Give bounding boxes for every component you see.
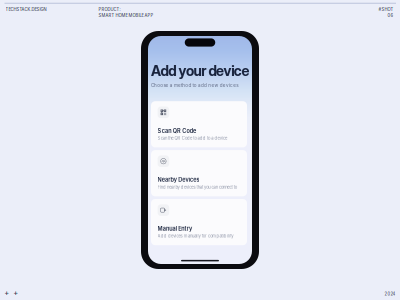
staticText: Scan QR Code bbox=[158, 127, 196, 134]
button[interactable]: Manual Entry bbox=[151, 199, 247, 245]
staticText: Scan the QR Code to add to a device bbox=[158, 136, 227, 141]
staticText: Choose a method to add new devices bbox=[151, 83, 238, 88]
staticText: 06 bbox=[387, 13, 393, 18]
staticText: Find nearby devices that you can connect… bbox=[158, 185, 237, 190]
staticText: + + bbox=[4, 288, 18, 297]
staticText: Add your device bbox=[151, 62, 249, 79]
staticText: Nearby Devices bbox=[158, 176, 199, 183]
staticText: Add devices manually for compatibility bbox=[158, 234, 233, 239]
staticText: Manual Entry bbox=[158, 225, 192, 232]
staticText: TECHSTACK.DESIGN bbox=[5, 7, 46, 12]
staticText: PRODUCT: bbox=[98, 7, 120, 12]
button[interactable]: Scan QR Code bbox=[151, 101, 247, 147]
staticText: 2024 bbox=[385, 291, 396, 296]
button[interactable]: Nearby Devices bbox=[151, 150, 247, 196]
staticText: #SHOT bbox=[378, 7, 393, 12]
staticText: SMART HOME MOBILE APP bbox=[98, 13, 153, 18]
